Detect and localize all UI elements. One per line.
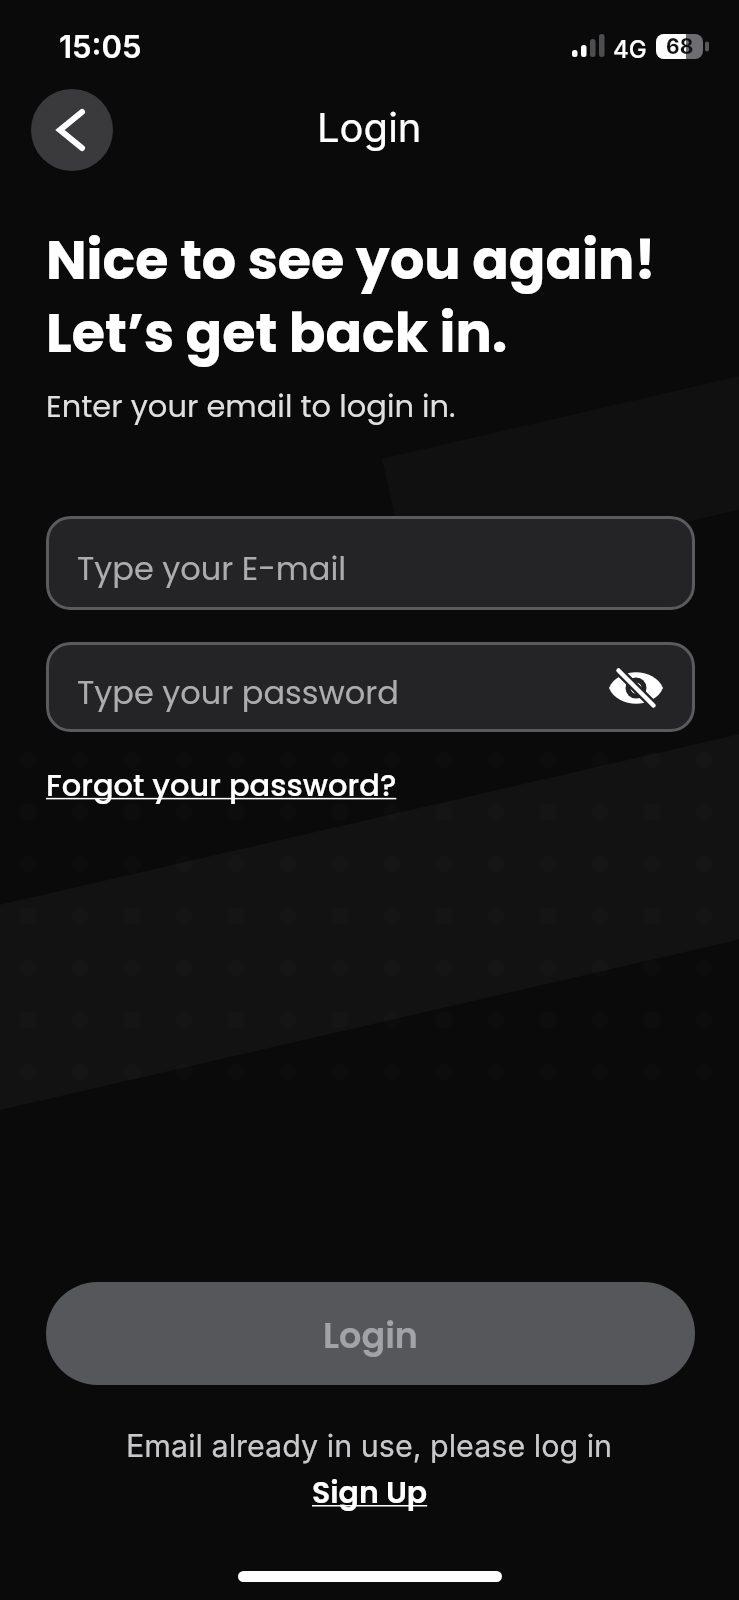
staticText: Email already in use, please log in — [126, 1427, 613, 1464]
staticText: Type your E-mail — [77, 546, 347, 591]
button[interactable]: Login — [46, 1282, 695, 1385]
staticText: 15:05 — [59, 28, 142, 66]
button[interactable]: Type your E-mail — [46, 516, 695, 610]
staticText: Login — [323, 1311, 418, 1360]
button[interactable]: Sign Up — [312, 1472, 428, 1514]
staticText: 4G — [613, 35, 647, 64]
button[interactable] — [606, 658, 666, 718]
staticText: Login — [317, 103, 422, 151]
staticText: Nice to see you again! Let’s get back in… — [46, 222, 656, 371]
button[interactable]: Forgot your password? — [46, 764, 397, 807]
staticText: Type your password — [77, 670, 399, 715]
staticText: Enter your email to login in. — [46, 385, 456, 428]
staticText: 68 — [666, 34, 694, 59]
button[interactable] — [31, 89, 113, 171]
button[interactable]: Type your password — [46, 642, 695, 732]
